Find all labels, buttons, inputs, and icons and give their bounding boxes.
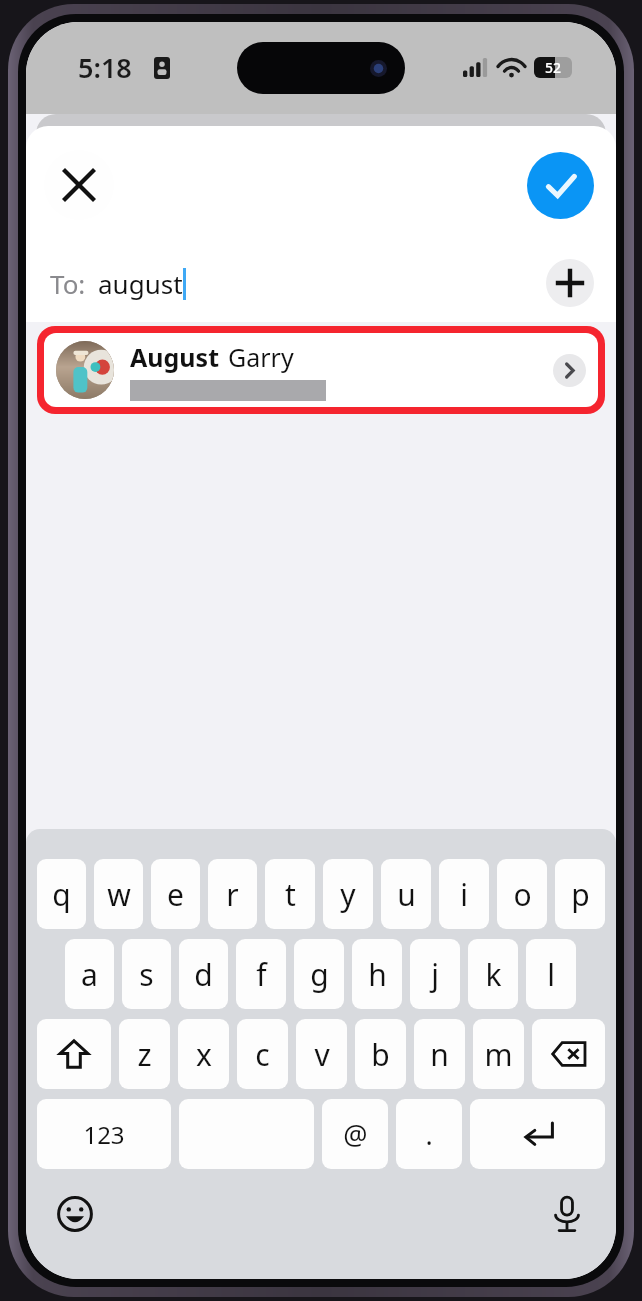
staticText: t <box>285 874 296 915</box>
button[interactable]: . <box>396 1099 462 1169</box>
button[interactable]: e <box>151 859 200 929</box>
button[interactable]: Done <box>527 152 594 219</box>
button[interactable]: k <box>468 939 518 1009</box>
button[interactable]: p <box>555 859 605 929</box>
button[interactable]: x <box>178 1019 229 1089</box>
button[interactable]: r <box>208 859 257 929</box>
staticText: s <box>139 954 154 995</box>
button[interactable]: Return <box>470 1099 605 1169</box>
button[interactable]: z <box>119 1019 170 1089</box>
staticText: u <box>397 874 416 915</box>
button[interactable]: @ <box>322 1099 388 1169</box>
button[interactable]: Space <box>179 1099 314 1169</box>
staticText: c <box>255 1034 270 1075</box>
staticText: . <box>425 1116 433 1153</box>
button[interactable]: y <box>323 859 373 929</box>
button[interactable]: q <box>37 859 86 929</box>
staticText: f <box>256 954 267 995</box>
button[interactable]: c <box>237 1019 288 1089</box>
button[interactable]: a <box>65 939 114 1009</box>
staticText: z <box>137 1034 152 1075</box>
staticText: b <box>371 1034 390 1075</box>
staticText: g <box>310 954 329 995</box>
staticText: 52 <box>545 58 562 77</box>
staticText: l <box>547 954 555 995</box>
staticText: @ <box>343 1116 368 1153</box>
staticText: august <box>98 266 183 301</box>
staticText: 5:18 <box>78 49 132 86</box>
staticText: a <box>81 954 98 995</box>
staticText: m <box>484 1034 513 1075</box>
staticText: r <box>226 874 239 915</box>
button[interactable]: t <box>265 859 315 929</box>
button[interactable]: Add contact <box>546 259 594 307</box>
button[interactable]: i <box>439 859 489 929</box>
staticText: August <box>130 340 220 374</box>
staticText: h <box>368 954 387 995</box>
staticText: n <box>430 1034 449 1075</box>
staticText: e <box>167 874 184 915</box>
button[interactable]: o <box>497 859 547 929</box>
staticText: To: <box>50 266 86 301</box>
staticText: q <box>52 874 71 915</box>
button[interactable]: Close <box>44 150 114 220</box>
button[interactable]: Emoji <box>52 1191 98 1237</box>
staticText: j <box>431 954 439 995</box>
staticText: v <box>314 1034 330 1075</box>
button[interactable]: 123 <box>37 1099 171 1169</box>
staticText: w <box>107 874 131 915</box>
button[interactable]: Delete <box>532 1019 605 1089</box>
button[interactable]: h <box>352 939 402 1009</box>
button[interactable]: d <box>179 939 228 1009</box>
button[interactable]: g <box>294 939 344 1009</box>
button[interactable]: u <box>381 859 431 929</box>
button[interactable]: l <box>526 939 576 1009</box>
button[interactable]: v <box>296 1019 347 1089</box>
button[interactable]: Dictation <box>544 1191 590 1237</box>
button[interactable]: August <box>44 333 598 407</box>
button[interactable]: b <box>355 1019 406 1089</box>
button[interactable]: j <box>410 939 460 1009</box>
staticText: Garry <box>228 340 294 374</box>
button[interactable]: Shift <box>37 1019 111 1089</box>
button[interactable]: m <box>473 1019 524 1089</box>
staticText: 123 <box>83 1118 125 1151</box>
staticText: k <box>485 954 502 995</box>
button[interactable]: f <box>236 939 286 1009</box>
staticText: o <box>513 874 532 915</box>
button[interactable]: w <box>94 859 143 929</box>
staticText: d <box>194 954 213 995</box>
button[interactable]: n <box>414 1019 465 1089</box>
staticText: y <box>340 874 356 915</box>
staticText: x <box>196 1034 212 1075</box>
button[interactable]: s <box>122 939 171 1009</box>
staticText: i <box>460 874 468 915</box>
staticText: p <box>571 874 590 915</box>
